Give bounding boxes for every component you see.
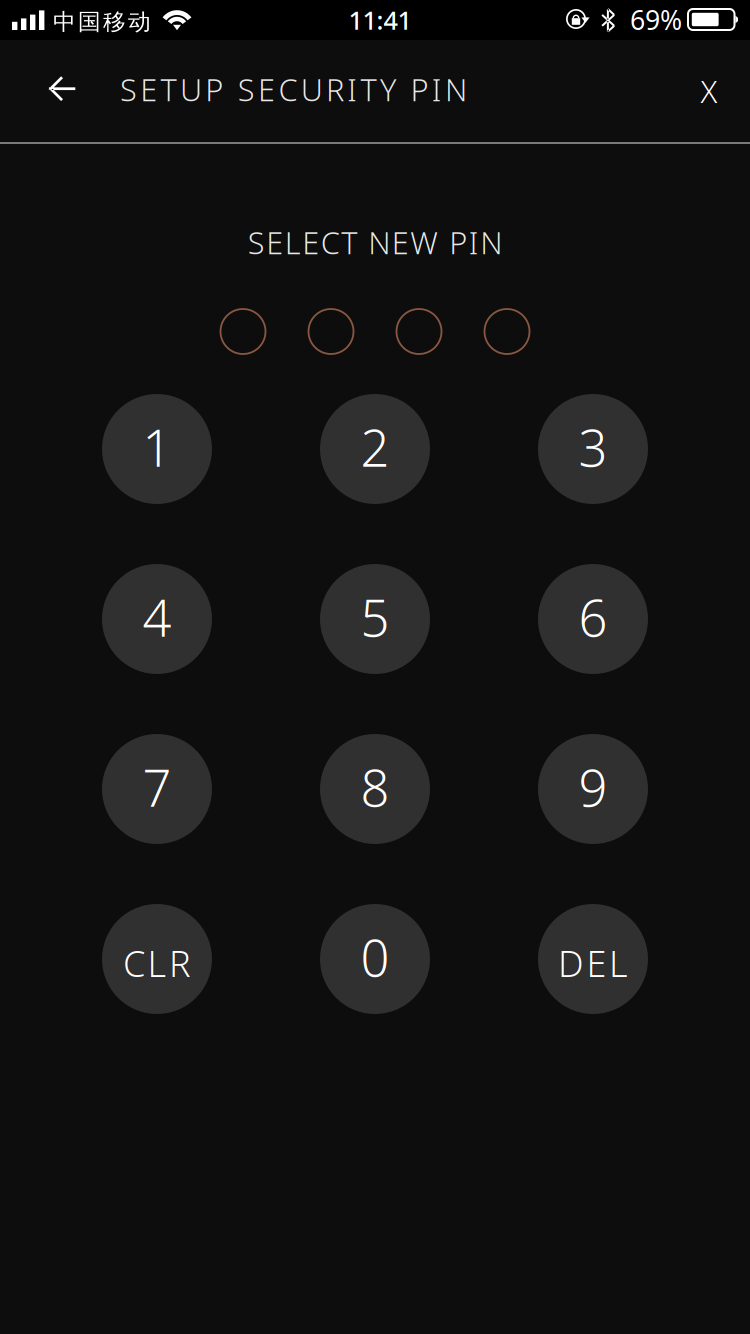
button[interactable]: 3 [538, 394, 648, 504]
staticText: 5 [360, 583, 389, 651]
staticText: X [700, 71, 717, 111]
staticText: 6 [578, 583, 607, 651]
staticText: 1 [142, 413, 171, 481]
button[interactable]: 0 [320, 904, 430, 1014]
button[interactable]: 4 [102, 564, 212, 674]
staticText: 7 [142, 753, 171, 821]
staticText: 3 [578, 413, 607, 481]
button[interactable]: DEL [538, 904, 648, 1014]
staticText: SETUP SECURITY PIN [120, 69, 467, 110]
staticText: 中国移动 [53, 8, 151, 36]
staticText: 0 [360, 923, 389, 991]
staticText: 69% [630, 2, 682, 37]
button[interactable]: 7 [102, 734, 212, 844]
button[interactable]: 1 [102, 394, 212, 504]
staticText: 2 [360, 413, 389, 481]
staticText: CLR [123, 939, 191, 987]
staticText: SELECT NEW PIN [248, 222, 502, 263]
staticText: 8 [360, 753, 389, 821]
button[interactable]: 6 [538, 564, 648, 674]
staticText: 4 [142, 583, 171, 651]
staticText: DEL [558, 939, 628, 987]
button[interactable]: Close [681, 60, 737, 122]
staticText: 11:41 [348, 3, 411, 37]
button[interactable]: CLR [102, 904, 212, 1014]
staticText: 9 [578, 753, 607, 821]
button[interactable]: Back [26, 58, 98, 120]
button[interactable]: 9 [538, 734, 648, 844]
button[interactable]: 2 [320, 394, 430, 504]
button[interactable]: 5 [320, 564, 430, 674]
button[interactable]: 8 [320, 734, 430, 844]
